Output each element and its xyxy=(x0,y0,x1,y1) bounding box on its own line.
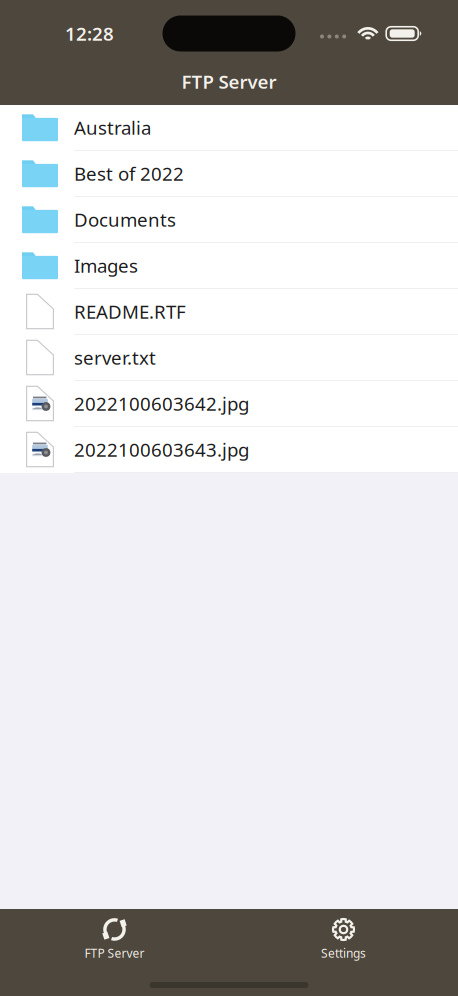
staticText: FTP Server xyxy=(181,69,276,94)
staticText: Australia xyxy=(74,115,151,140)
staticText: 2022100603643.jpg xyxy=(74,437,249,462)
button[interactable]: Best of 2022 xyxy=(0,151,458,197)
button[interactable]: server.txt xyxy=(0,335,458,381)
button[interactable]: 2022100603643.jpg xyxy=(0,427,458,473)
staticText: 2022100603642.jpg xyxy=(74,391,249,416)
button[interactable]: Settings xyxy=(229,917,458,960)
button[interactable]: 2022100603642.jpg xyxy=(0,381,458,427)
staticText: server.txt xyxy=(74,345,156,370)
staticText: README.RTF xyxy=(74,299,186,324)
staticText: FTP Server xyxy=(84,945,144,961)
staticText: 12:28 xyxy=(65,21,114,46)
staticText: Best of 2022 xyxy=(74,161,184,186)
button[interactable]: README.RTF xyxy=(0,289,458,335)
button[interactable]: Images xyxy=(0,243,458,289)
button[interactable]: FTP Server xyxy=(0,917,229,960)
button[interactable]: Australia xyxy=(0,105,458,151)
button[interactable]: Documents xyxy=(0,197,458,243)
staticText: Settings xyxy=(321,945,366,961)
staticText: Documents xyxy=(74,207,176,232)
staticText: Images xyxy=(74,253,138,278)
